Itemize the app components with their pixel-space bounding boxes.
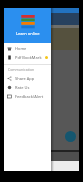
staticText: Communication — [8, 67, 35, 72]
button[interactable]: Home — [4, 44, 51, 53]
staticText: Feedback/Alert — [15, 94, 44, 99]
staticText: Home — [15, 46, 27, 51]
button[interactable]: Add — [65, 131, 76, 142]
staticText: Rate Us — [15, 85, 30, 90]
staticText: Share App — [15, 76, 35, 81]
staticText: Learn online — [16, 31, 40, 36]
button[interactable]: Feedback/Alert — [4, 92, 51, 101]
button[interactable]: Pdf BookMark — [4, 53, 51, 62]
button[interactable]: Share App — [4, 74, 51, 83]
staticText: Pdf BookMark — [15, 55, 42, 60]
button[interactable]: Rate Us — [4, 83, 51, 92]
